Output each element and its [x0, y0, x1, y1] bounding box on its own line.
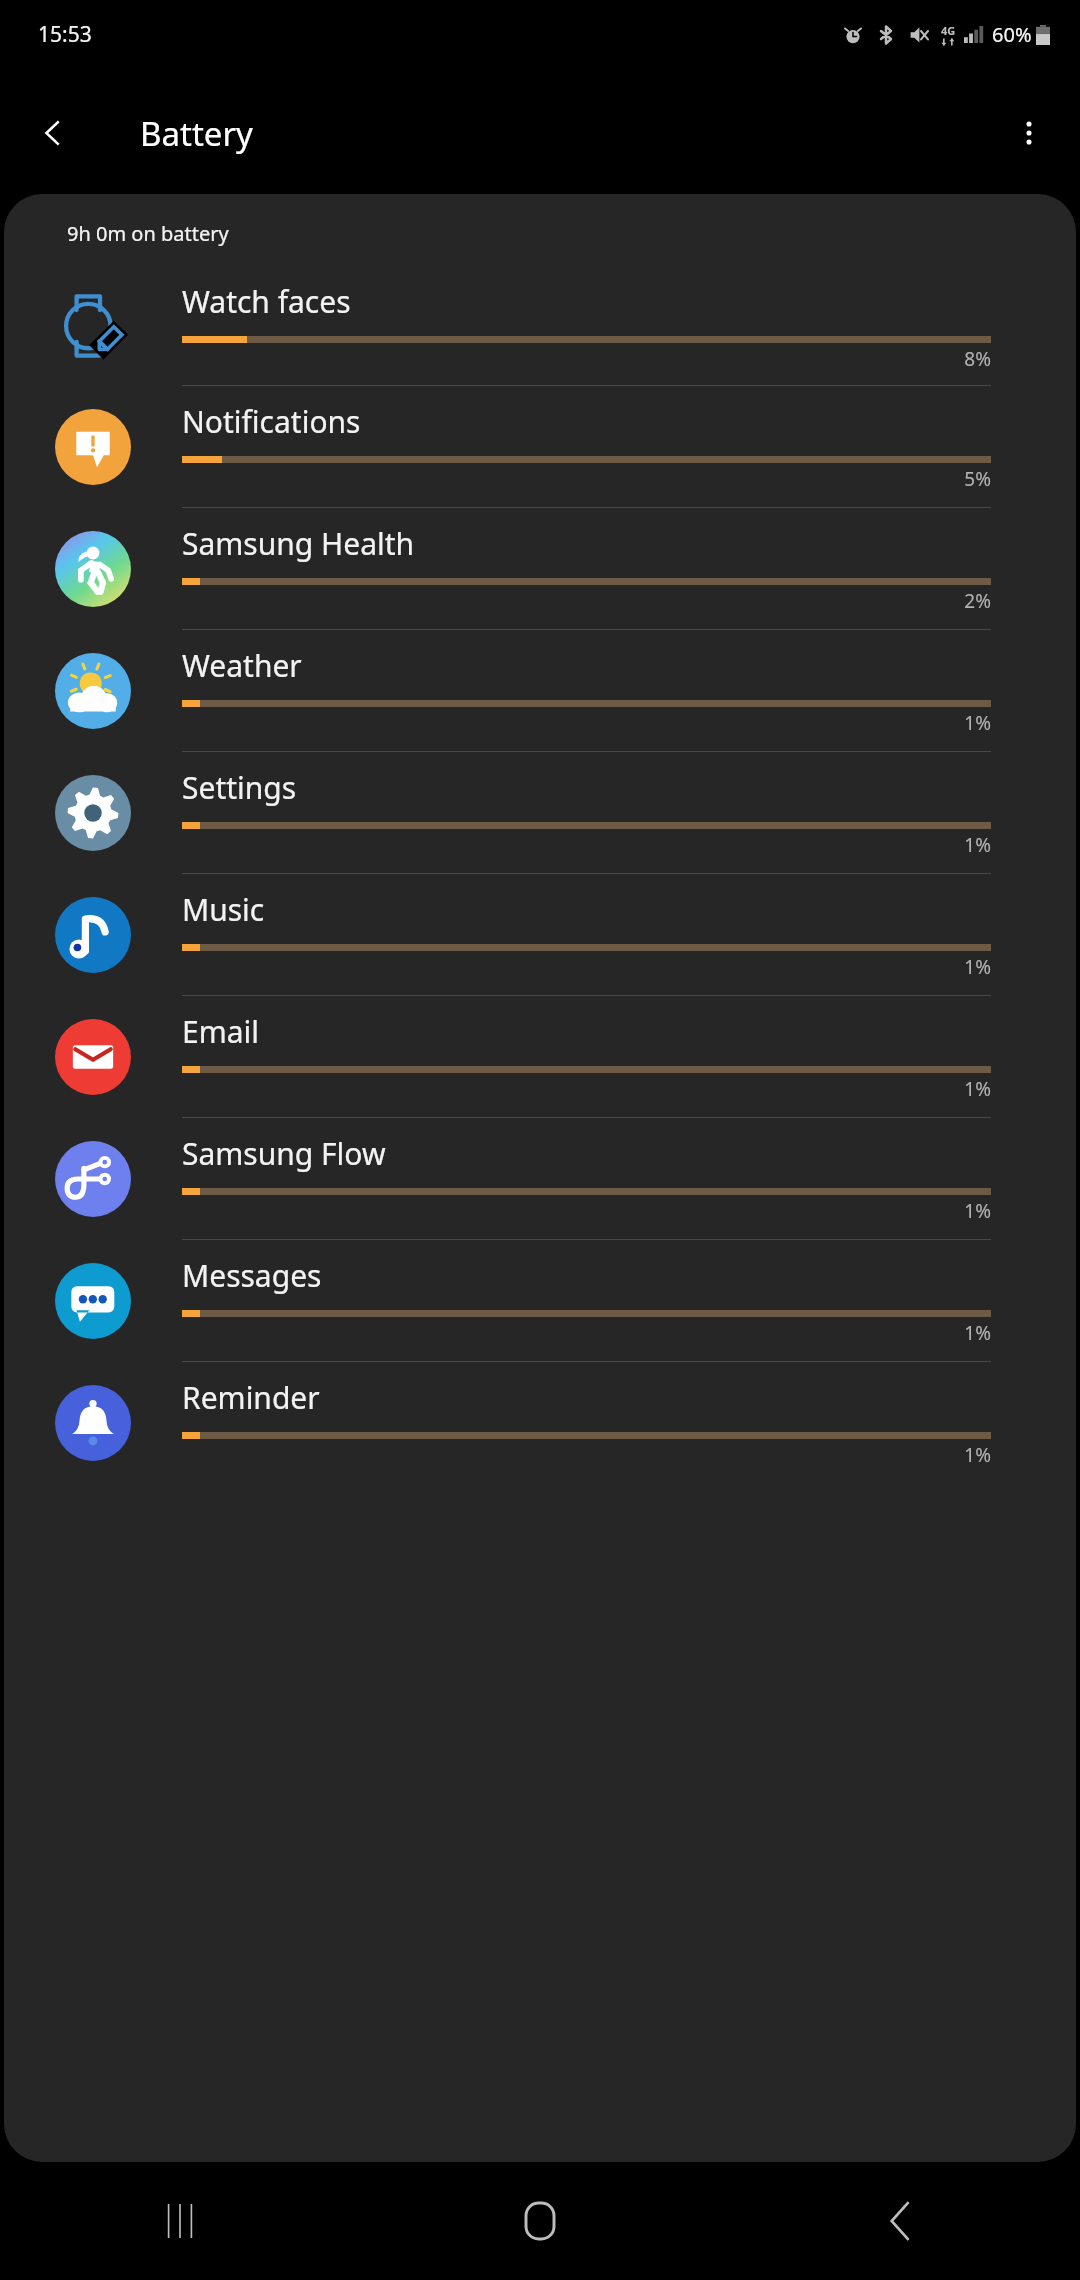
staticText: 9h 0m on battery — [67, 220, 229, 247]
button[interactable]: Messages — [4, 1239, 1076, 1361]
staticText: Messages — [182, 1255, 322, 1296]
staticText: Settings — [182, 767, 297, 808]
staticText: 4G — [941, 23, 956, 38]
staticText: Watch faces — [182, 281, 351, 322]
staticText: 1% — [182, 1320, 991, 1346]
staticText: Samsung Flow — [182, 1133, 386, 1174]
staticText: 8% — [182, 346, 991, 372]
button[interactable]: Samsung Health — [4, 507, 1076, 629]
staticText: 60% — [992, 21, 1032, 48]
button[interactable]: Samsung Flow — [4, 1117, 1076, 1239]
staticText: 5% — [182, 466, 991, 492]
staticText: Email — [182, 1011, 260, 1052]
button[interactable]: Watch faces — [4, 267, 1076, 385]
staticText: 1% — [182, 832, 991, 858]
staticText: Notifications — [182, 401, 361, 442]
staticText: 1% — [182, 954, 991, 980]
button[interactable]: More options — [1000, 104, 1058, 162]
button[interactable]: Reminder — [4, 1361, 1076, 1483]
staticText: 1% — [182, 1198, 991, 1224]
staticText: Reminder — [182, 1377, 320, 1418]
button[interactable]: Settings — [4, 751, 1076, 873]
button[interactable]: Back — [24, 104, 82, 162]
button[interactable]: Email — [4, 995, 1076, 1117]
staticText: 1% — [182, 710, 991, 736]
button[interactable]: Back — [720, 2162, 1080, 2280]
staticText: Weather — [182, 645, 302, 686]
staticText: 1% — [182, 1442, 991, 1468]
staticText: Battery — [140, 111, 253, 156]
staticText: Samsung Health — [182, 523, 415, 564]
staticText: 2% — [182, 588, 991, 614]
staticText: 15:53 — [38, 20, 92, 49]
staticText: 1% — [182, 1076, 991, 1102]
button[interactable]: Music — [4, 873, 1076, 995]
button[interactable]: Home — [360, 2162, 720, 2280]
button[interactable]: Weather — [4, 629, 1076, 751]
button[interactable]: Notifications — [4, 385, 1076, 507]
button[interactable]: Recents — [0, 2162, 360, 2280]
staticText: Music — [182, 889, 265, 930]
